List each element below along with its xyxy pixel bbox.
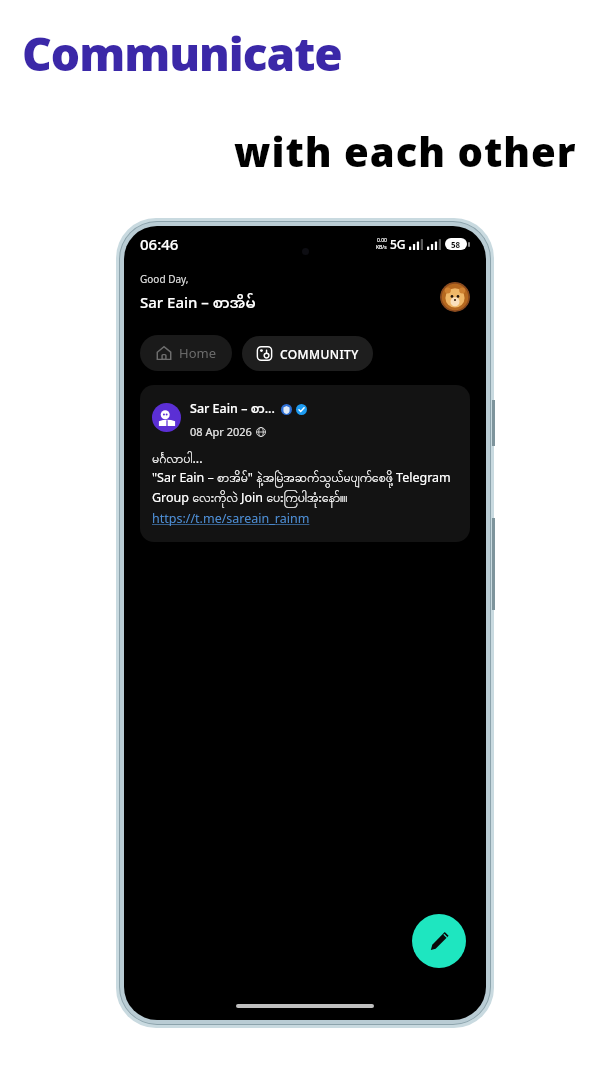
staticText: 06:46 xyxy=(140,234,179,254)
staticText: Good Day, xyxy=(140,272,189,286)
staticText: 5G xyxy=(390,236,406,252)
staticText: Home xyxy=(179,344,216,362)
staticText: မင်္ဂလာပါ... xyxy=(152,450,203,469)
staticText: 08 Apr 2026 xyxy=(190,424,252,439)
button[interactable]: https://t.me/sareain_rainm xyxy=(152,510,310,527)
staticText: 0.00 xyxy=(377,237,387,244)
button[interactable]: Profile xyxy=(440,282,470,312)
staticText: COMMUNITY xyxy=(280,346,359,362)
staticText: 58 xyxy=(451,239,461,250)
button[interactable]: Compose new post xyxy=(412,914,466,968)
staticText: KB/s xyxy=(376,244,387,251)
button[interactable]: COMMUNITY xyxy=(242,336,373,371)
staticText: with each other xyxy=(234,124,577,178)
staticText: Sar Eain – စာအိမ် xyxy=(140,288,256,321)
staticText: Communicate xyxy=(22,22,342,85)
button[interactable]: Sar Eain – စာ... xyxy=(140,385,470,542)
staticText: Sar Eain – စာ... xyxy=(190,396,275,423)
staticText: "Sar Eain – စာအိမ်" နဲ့အမြဲအဆက်သွယ်မပျက်… xyxy=(152,469,458,508)
button[interactable]: Home xyxy=(140,335,232,371)
